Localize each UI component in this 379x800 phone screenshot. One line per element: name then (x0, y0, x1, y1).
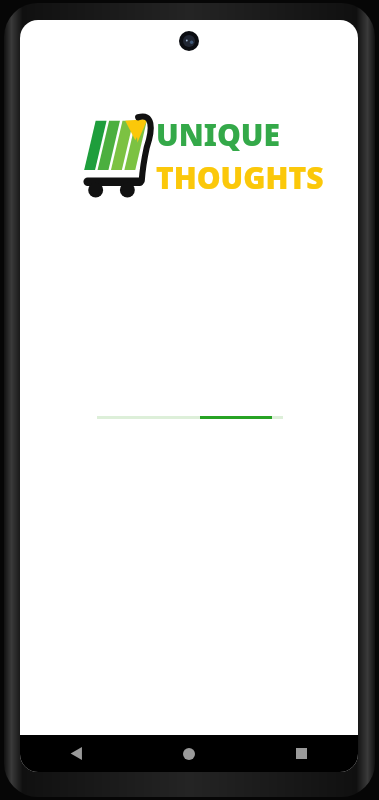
staticText: THOUGHTS (156, 157, 324, 198)
staticText: UNIQUE (156, 114, 281, 155)
button[interactable]: Recent apps (245, 735, 358, 772)
button[interactable]: Back (20, 735, 132, 772)
button[interactable]: Home (132, 735, 245, 772)
